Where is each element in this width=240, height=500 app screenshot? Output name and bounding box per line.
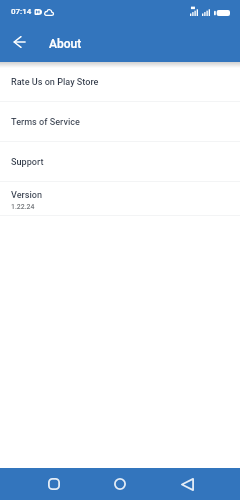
staticText: 07:14 <box>11 7 32 16</box>
button[interactable]: Navigate up <box>1 24 37 60</box>
staticText: Version <box>11 190 43 201</box>
button[interactable]: Support <box>0 142 240 182</box>
button[interactable]: Rate Us on Play Store <box>0 62 240 102</box>
staticText: About <box>49 37 82 51</box>
staticText: Terms of Service <box>11 117 80 128</box>
button[interactable]: Recent apps <box>42 472 66 496</box>
button[interactable]: Terms of Service <box>0 102 240 142</box>
button[interactable]: Home <box>108 472 132 496</box>
staticText: 1.22.24 <box>11 203 35 211</box>
button[interactable]: Back <box>175 472 199 496</box>
button[interactable]: Version <box>0 182 240 216</box>
staticText: Support <box>11 157 44 168</box>
staticText: Rate Us on Play Store <box>11 77 99 88</box>
